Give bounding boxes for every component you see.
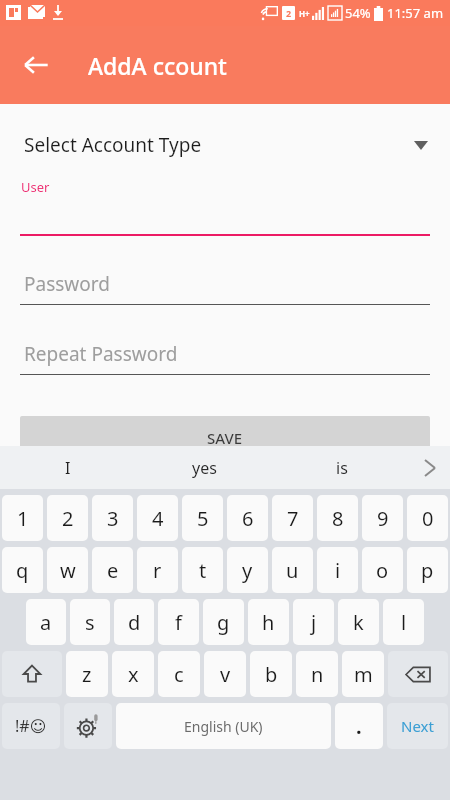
staticText: e xyxy=(107,557,119,584)
staticText: 2 xyxy=(286,7,292,19)
staticText: Select Account Type xyxy=(24,132,202,158)
staticText: 5 xyxy=(197,505,209,532)
staticText: l xyxy=(401,609,407,636)
button[interactable]: x xyxy=(112,651,154,697)
button[interactable]: 8 xyxy=(317,495,358,541)
staticText: English (UK) xyxy=(184,717,263,736)
button[interactable]: l xyxy=(383,599,424,645)
staticText: . xyxy=(356,713,362,740)
button[interactable]: Navigate up xyxy=(12,41,60,89)
button[interactable]: 2 xyxy=(47,495,88,541)
button[interactable]: 9 xyxy=(362,495,403,541)
staticText: 11:57 am xyxy=(387,4,444,22)
button[interactable]: i xyxy=(317,547,358,593)
button[interactable]: is xyxy=(273,446,410,489)
button[interactable]: I xyxy=(0,446,136,489)
staticText: 54% xyxy=(345,4,371,22)
staticText: g xyxy=(217,609,230,636)
button[interactable]: d xyxy=(114,599,154,645)
staticText: r xyxy=(153,557,162,584)
button[interactable]: j xyxy=(293,599,334,645)
button[interactable]: h xyxy=(248,599,289,645)
button[interactable]: 0 xyxy=(407,495,448,541)
staticText: Password xyxy=(24,271,110,297)
button[interactable]: 4 xyxy=(137,495,178,541)
button[interactable]: v xyxy=(204,651,246,697)
button[interactable]: Shift xyxy=(2,651,62,697)
button[interactable]: yes xyxy=(136,446,273,489)
staticText: v xyxy=(220,661,231,688)
button[interactable] xyxy=(20,200,430,236)
button[interactable]: Select Account Type xyxy=(0,120,450,170)
button[interactable]: y xyxy=(227,547,268,593)
button[interactable]: o xyxy=(362,547,403,593)
button[interactable]: q xyxy=(2,547,43,593)
button[interactable]: Repeat Password xyxy=(20,332,430,376)
staticText: 1 xyxy=(17,505,29,532)
staticText: 4 xyxy=(152,505,164,532)
staticText: n xyxy=(311,661,324,688)
staticText: y xyxy=(242,557,253,584)
button[interactable]: k xyxy=(338,599,379,645)
staticText: Repeat Password xyxy=(24,341,178,367)
button[interactable]: More suggestions xyxy=(410,446,450,489)
button[interactable]: n xyxy=(296,651,338,697)
button[interactable]: 7 xyxy=(272,495,313,541)
staticText: 9 xyxy=(377,505,389,532)
button[interactable]: s xyxy=(70,599,110,645)
staticText: t xyxy=(199,557,207,584)
staticText: s xyxy=(85,609,95,636)
staticText: b xyxy=(265,661,278,688)
staticText: SAVE xyxy=(207,428,243,448)
button[interactable]: m xyxy=(342,651,384,697)
button[interactable]: SAVE xyxy=(20,416,430,460)
staticText: m xyxy=(354,661,373,688)
staticText: 2 xyxy=(62,505,74,532)
button[interactable]: 5 xyxy=(182,495,223,541)
staticText: f xyxy=(175,609,182,636)
staticText: yes xyxy=(192,457,217,479)
staticText: x xyxy=(128,661,139,688)
button[interactable]: b xyxy=(250,651,292,697)
button[interactable]: g xyxy=(203,599,244,645)
staticText: h xyxy=(262,609,275,636)
button[interactable]: u xyxy=(272,547,313,593)
button[interactable]: c xyxy=(158,651,200,697)
staticText: o xyxy=(376,557,389,584)
staticText: p xyxy=(421,557,434,584)
staticText: a xyxy=(40,609,52,636)
staticText: 3 xyxy=(107,505,119,532)
button[interactable]: t xyxy=(182,547,223,593)
staticText: k xyxy=(353,609,364,636)
staticText: d xyxy=(128,609,141,636)
staticText: User xyxy=(21,178,50,196)
button[interactable]: Password xyxy=(20,262,430,306)
button[interactable]: English (UK) xyxy=(116,703,331,749)
button[interactable]: Keyboard settings xyxy=(64,703,112,749)
staticText: w xyxy=(60,557,76,584)
staticText: AddA ccount xyxy=(88,50,227,81)
staticText: Next xyxy=(401,716,434,736)
staticText: 0 xyxy=(422,505,434,532)
button[interactable]: 1 xyxy=(2,495,43,541)
button[interactable]: w xyxy=(47,547,88,593)
button[interactable]: 6 xyxy=(227,495,268,541)
button[interactable]: p xyxy=(407,547,448,593)
button[interactable]: e xyxy=(92,547,133,593)
button[interactable]: . xyxy=(335,703,383,749)
staticText: i xyxy=(335,557,341,584)
button[interactable]: r xyxy=(137,547,178,593)
staticText: is xyxy=(336,457,348,479)
button[interactable]: Backspace xyxy=(388,651,448,697)
staticText: 6 xyxy=(242,505,254,532)
staticText: H+ xyxy=(299,8,310,19)
staticText: c xyxy=(174,661,184,688)
button[interactable]: Next xyxy=(387,703,448,749)
button[interactable]: f xyxy=(158,599,199,645)
staticText: I xyxy=(65,457,71,479)
button[interactable]: Symbols and emoji xyxy=(2,703,60,749)
button[interactable]: z xyxy=(66,651,108,697)
staticText: 7 xyxy=(287,505,299,532)
button[interactable]: 3 xyxy=(92,495,133,541)
button[interactable]: a xyxy=(26,599,66,645)
